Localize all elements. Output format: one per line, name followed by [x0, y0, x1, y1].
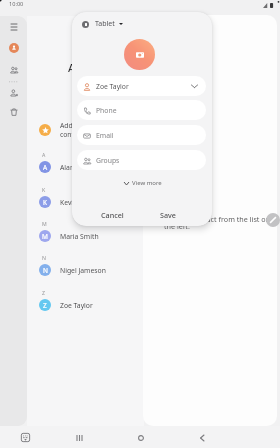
- staticText: Add new contact: [60, 121, 88, 139]
- button[interactable]: M: [27, 225, 144, 247]
- staticText: Kevin Smith: [60, 198, 98, 207]
- button[interactable]: Zoe Taylor: [77, 76, 206, 96]
- button[interactable]: Recent apps: [71, 430, 87, 445]
- button[interactable]: Add new contact: [27, 119, 144, 141]
- staticText: N: [42, 254, 46, 261]
- staticText: N: [43, 266, 48, 275]
- staticText: Email: [96, 131, 114, 140]
- staticText: Cancel: [101, 210, 124, 220]
- staticText: All contacts: [68, 60, 129, 75]
- staticText: Zoe Taylor: [60, 301, 93, 310]
- button[interactable]: N: [27, 259, 144, 281]
- staticText: Z: [42, 289, 45, 296]
- staticText: M: [42, 220, 47, 227]
- staticText: Alan Cooper: [60, 163, 100, 172]
- button[interactable]: Back: [194, 430, 210, 445]
- staticText: Nigel Jameson: [60, 266, 106, 275]
- staticText: A: [43, 163, 48, 172]
- staticText: Maria Smith: [60, 232, 99, 241]
- staticText: K: [42, 186, 46, 193]
- button[interactable]: Edit: [266, 213, 280, 227]
- button[interactable]: Add photo: [124, 39, 155, 70]
- button[interactable]: A: [27, 156, 144, 178]
- button[interactable]: Home: [133, 430, 149, 445]
- button[interactable]: Save: [152, 207, 184, 223]
- button[interactable]: Hide keyboard: [17, 430, 33, 445]
- button[interactable]: Groups: [7, 63, 21, 77]
- button[interactable]: Delete: [7, 105, 21, 119]
- staticText: Groups: [96, 156, 120, 165]
- button[interactable]: Contacts: [9, 43, 19, 53]
- staticText: M: [42, 232, 48, 241]
- button[interactable]: K: [27, 191, 144, 213]
- button[interactable]: Menu: [7, 20, 21, 34]
- staticText: Select a contact from the list on the le…: [164, 214, 271, 231]
- staticText: Save: [160, 210, 176, 220]
- staticText: 10:00: [9, 0, 24, 8]
- staticText: View more: [132, 179, 162, 187]
- button[interactable]: Groups: [77, 150, 206, 170]
- button[interactable]: Cancel: [94, 207, 130, 223]
- button[interactable]: Email: [77, 125, 206, 145]
- button[interactable]: Add contact: [7, 86, 21, 100]
- staticText: A: [42, 151, 46, 158]
- staticText: K: [43, 198, 48, 207]
- staticText: Tablet: [95, 19, 115, 29]
- button[interactable]: View more: [124, 177, 162, 189]
- button[interactable]: Z: [27, 294, 144, 316]
- button[interactable]: Phone: [77, 100, 206, 120]
- staticText: Phone: [96, 106, 117, 115]
- staticText: Z: [43, 301, 47, 310]
- staticText: Zoe Taylor: [96, 82, 129, 91]
- button[interactable]: Tablet: [82, 17, 123, 31]
